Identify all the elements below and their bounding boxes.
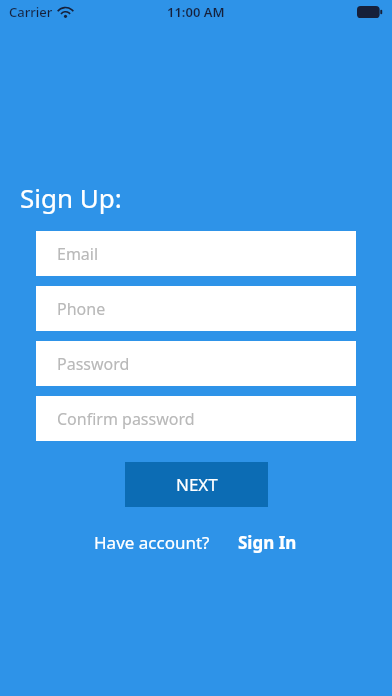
staticText: NEXT: [176, 473, 218, 496]
staticText: Sign In: [238, 531, 297, 554]
staticText: Confirm password: [57, 408, 195, 430]
button[interactable]: Sign In: [236, 527, 299, 558]
staticText: Sign Up:: [20, 180, 122, 215]
staticText: 11:00 AM: [167, 3, 225, 21]
other: Battery full: [357, 6, 383, 18]
staticText: Have account?: [94, 531, 210, 554]
other: Wi-Fi signal: [58, 7, 73, 18]
staticText: Password: [57, 353, 130, 375]
button[interactable]: Password: [36, 341, 356, 386]
button[interactable]: Phone: [36, 286, 356, 331]
staticText: Email: [57, 243, 99, 265]
button[interactable]: Email: [36, 231, 356, 276]
button[interactable]: Confirm password: [36, 396, 356, 441]
staticText: Phone: [57, 298, 106, 320]
staticText: Carrier: [9, 3, 53, 21]
button[interactable]: NEXT: [125, 462, 268, 507]
